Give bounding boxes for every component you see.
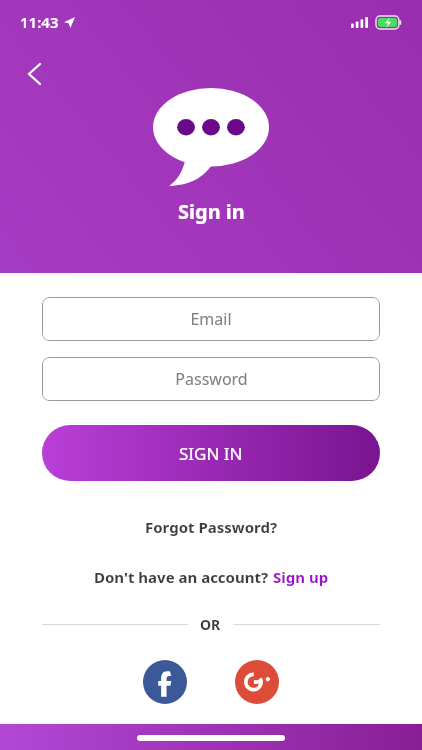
button[interactable]: Back bbox=[12, 52, 56, 96]
staticText: Don't have an account? bbox=[94, 567, 273, 587]
staticText: Forgot Password? bbox=[145, 517, 278, 537]
button[interactable]: Sign in with Facebook bbox=[143, 660, 187, 704]
staticText: Email bbox=[190, 308, 232, 330]
staticText: Sign in bbox=[178, 198, 245, 225]
button[interactable]: Don't have an account? bbox=[90, 563, 333, 591]
button[interactable]: Email bbox=[42, 297, 380, 341]
button[interactable]: Forgot Password? bbox=[137, 513, 286, 541]
button[interactable]: Sign in with Google Plus bbox=[235, 660, 279, 704]
staticText: Password bbox=[175, 368, 248, 390]
button[interactable]: Password bbox=[42, 357, 380, 401]
staticText: OR bbox=[200, 615, 221, 634]
staticText: 11:43 bbox=[20, 12, 59, 32]
staticText: Sign up bbox=[273, 567, 329, 587]
staticText: SIGN IN bbox=[179, 442, 243, 465]
button[interactable]: SIGN IN bbox=[42, 425, 380, 481]
